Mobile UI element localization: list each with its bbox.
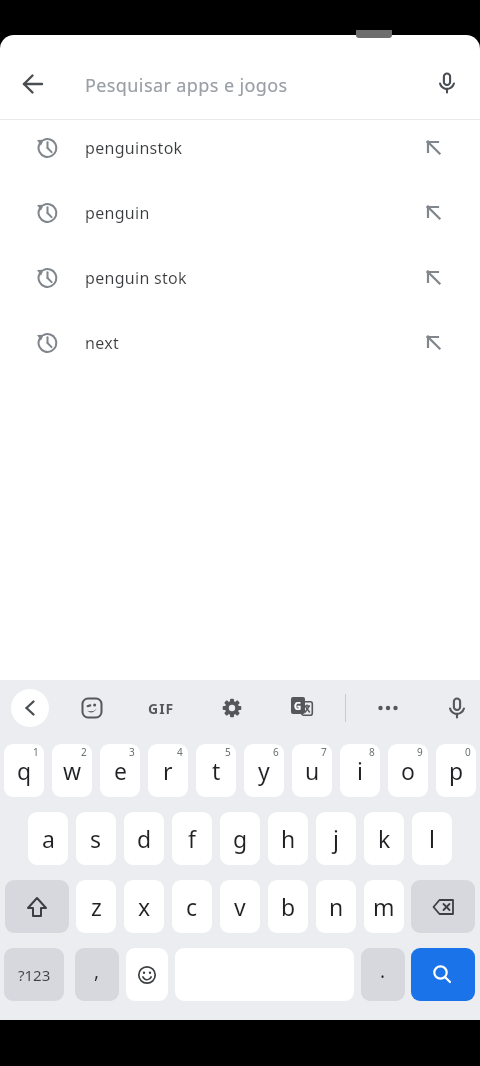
button[interactable]: v [220,880,260,933]
staticText: m [373,891,395,922]
button[interactable]: z [76,880,116,933]
staticText: t [212,755,221,786]
staticText: k [378,823,391,854]
staticText: G [294,699,302,713]
button[interactable] [446,697,468,719]
button[interactable]: i [340,744,380,797]
staticText: 4 [177,745,183,759]
button[interactable] [5,880,69,933]
staticText: Pesquisar apps e jogos [85,73,288,98]
staticText: 0 [465,745,471,759]
staticText: v [234,891,246,922]
staticText: l [429,823,435,854]
button[interactable]: , [75,948,119,1001]
button[interactable]: m [364,880,404,933]
button[interactable]: t [196,744,236,797]
staticText: n [329,891,344,922]
staticText: q [17,755,32,786]
staticText: 3 [129,745,135,759]
button[interactable]: e [100,744,140,797]
staticText: h [281,823,296,854]
button[interactable]: k [364,812,404,865]
button[interactable]: y [244,744,284,797]
button[interactable]: r [148,744,188,797]
button[interactable]: next [0,310,480,375]
staticText: a [42,823,55,854]
staticText: e [114,755,127,786]
staticText: 9 [417,745,423,759]
button[interactable]: d [124,812,164,865]
button[interactable] [221,697,243,719]
button[interactable]: l [412,812,452,865]
staticText: penguin [85,202,150,224]
staticText: c [186,891,198,922]
button[interactable]: penguin stok [0,245,480,310]
button[interactable]: u [292,744,332,797]
staticText: . [380,958,386,984]
button[interactable]: c [172,880,212,933]
staticText: z [91,891,102,922]
staticText: r [163,755,173,786]
button[interactable] [81,697,103,719]
staticText: s [90,823,102,854]
button[interactable] [411,948,475,1001]
button[interactable]: G [291,697,313,719]
button[interactable]: ?123 [4,948,64,1001]
staticText: u [305,755,320,786]
button[interactable] [436,72,458,94]
staticText: j [333,823,339,854]
button[interactable]: GIF [148,699,175,718]
button[interactable]: a [28,812,68,865]
staticText: f [188,823,196,854]
button[interactable]: n [316,880,356,933]
staticText: 6 [273,745,279,759]
button[interactable]: o [388,744,428,797]
staticText: y [258,755,270,786]
button[interactable] [11,689,49,727]
button[interactable]: g [220,812,260,865]
staticText: x [138,891,151,922]
staticText: 2 [81,745,87,759]
staticText: , [94,958,100,984]
button[interactable] [126,948,168,1001]
button[interactable] [411,880,475,933]
button[interactable]: q [4,744,44,797]
staticText: p [449,755,464,786]
staticText: g [233,823,248,854]
staticText: ?123 [18,965,51,985]
staticText: 7 [321,745,327,759]
staticText: w [63,755,82,786]
button[interactable]: x [124,880,164,933]
button[interactable]: penguinstok [0,115,480,180]
staticText: b [281,891,296,922]
button[interactable]: b [268,880,308,933]
staticText: o [401,755,415,786]
staticText: 8 [369,745,375,759]
button[interactable] [22,73,44,95]
button[interactable]: f [172,812,212,865]
staticText: penguinstok [85,137,183,159]
button[interactable]: p [436,744,476,797]
staticText: 1 [33,745,39,759]
staticText: 5 [225,745,231,759]
staticText: penguin stok [85,267,187,289]
button[interactable]: penguin [0,180,480,245]
button[interactable]: . [361,948,405,1001]
button[interactable]: h [268,812,308,865]
button[interactable]: j [316,812,356,865]
staticText: d [137,823,152,854]
button[interactable]: s [76,812,116,865]
button[interactable] [377,697,399,719]
button[interactable]: Pesquisar apps e jogos [0,35,480,119]
button[interactable]: w [52,744,92,797]
staticText: i [357,755,363,786]
staticText: next [85,332,120,354]
